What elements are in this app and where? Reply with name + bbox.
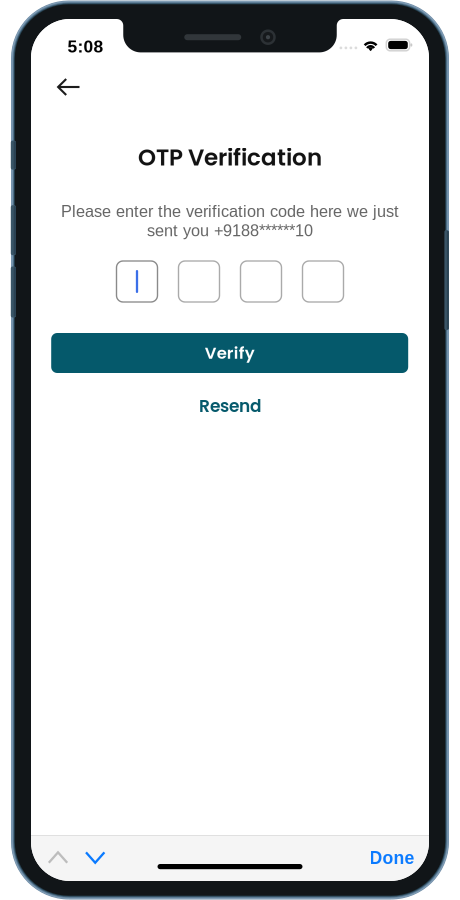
staticText: Done <box>369 848 414 868</box>
button[interactable]: Resend <box>31 395 429 417</box>
button[interactable]: Previous field <box>41 841 75 873</box>
staticText: Resend <box>199 394 261 418</box>
button[interactable]: Done <box>362 842 422 874</box>
staticText: 5:08 <box>67 37 103 56</box>
staticText: OTP Verification <box>138 141 322 173</box>
button[interactable]: Verify <box>51 333 408 373</box>
staticText: sent you +9188******10 <box>147 221 313 240</box>
button[interactable]: Next field <box>78 841 112 873</box>
staticText: Verify <box>205 341 255 364</box>
button[interactable]: Back <box>47 67 91 107</box>
staticText: Please enter the verification code here … <box>61 202 399 220</box>
